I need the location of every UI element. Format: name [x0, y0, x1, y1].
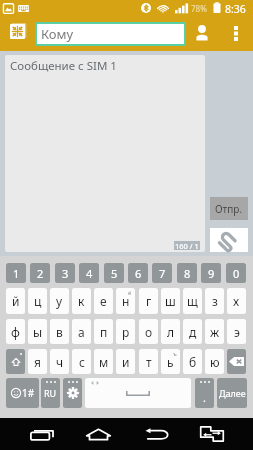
staticText: м: [99, 354, 109, 370]
staticText: з: [212, 293, 218, 309]
button[interactable]: 3: [55, 263, 75, 283]
button[interactable]: Back: [138, 422, 174, 446]
button[interactable]: 8: [177, 263, 197, 283]
button[interactable]: к: [72, 288, 91, 314]
staticText: п: [100, 324, 108, 340]
button[interactable]: ю: [205, 349, 224, 374]
staticText: 2: [37, 266, 44, 281]
staticText: ж: [210, 324, 220, 340]
button[interactable]: о: [139, 319, 158, 344]
button[interactable]: п: [94, 319, 113, 344]
button[interactable]: м: [94, 349, 113, 374]
button[interactable]: Next: [217, 378, 247, 408]
staticText: л: [167, 324, 175, 340]
staticText: ч: [56, 354, 64, 370]
button[interactable]: с: [72, 349, 91, 374]
button[interactable]: 2: [30, 263, 50, 283]
staticText: к: [78, 293, 85, 309]
staticText: р: [122, 324, 130, 340]
staticText: Сообщение с SIM 1: [10, 58, 117, 74]
button[interactable]: е: [94, 288, 113, 314]
button[interactable]: 0: [226, 263, 246, 283]
button[interactable]: Сообщение с SIM 1: [5, 55, 205, 252]
staticText: 9: [208, 266, 215, 281]
staticText: 0: [233, 266, 240, 281]
button[interactable]: 7: [152, 263, 172, 283]
button[interactable]: Отпр.: [210, 197, 248, 220]
staticText: Кому: [41, 25, 74, 43]
staticText: 6: [135, 266, 142, 281]
staticText: я: [34, 354, 41, 370]
button[interactable]: я: [28, 349, 47, 374]
staticText: щ: [187, 293, 198, 309]
staticText: Далее: [219, 387, 246, 399]
button[interactable]: Change language: [41, 378, 60, 408]
button[interactable]: Attach file: [210, 228, 248, 252]
staticText: б: [189, 354, 197, 370]
button[interactable]: Period: [195, 378, 214, 408]
staticText: н: [122, 293, 130, 309]
button[interactable]: г: [139, 288, 158, 314]
staticText: е: [100, 293, 107, 309]
button[interactable]: Space: [85, 378, 191, 408]
button[interactable]: Select contacts: [189, 20, 215, 46]
button[interactable]: х: [227, 288, 246, 314]
button[interactable]: т: [139, 349, 158, 374]
button[interactable]: Backspace: [227, 349, 246, 374]
button[interactable]: в: [50, 319, 69, 344]
button[interactable]: 4: [79, 263, 99, 283]
button[interactable]: л: [161, 319, 180, 344]
staticText: 5: [111, 266, 118, 281]
button[interactable]: й: [6, 288, 25, 314]
staticText: ю: [210, 354, 220, 370]
button[interactable]: а: [72, 319, 91, 344]
button[interactable]: 9: [201, 263, 221, 283]
staticText: 1#: [22, 386, 35, 400]
button[interactable]: ь: [161, 349, 180, 374]
staticText: о: [145, 324, 153, 340]
staticText: с: [79, 354, 85, 370]
button[interactable]: Кому: [35, 22, 186, 46]
button[interactable]: б: [183, 349, 202, 374]
staticText: 3: [62, 266, 69, 281]
staticText: RU: [44, 387, 57, 399]
staticText: 78%: [191, 3, 207, 14]
button[interactable]: 5: [104, 263, 124, 283]
staticText: 8:36: [225, 2, 246, 16]
staticText: т: [146, 354, 152, 370]
button[interactable]: More options: [223, 20, 249, 46]
staticText: й: [12, 293, 20, 309]
button[interactable]: ч: [50, 349, 69, 374]
button[interactable]: Recent apps: [24, 422, 60, 446]
staticText: ё: [128, 289, 132, 297]
staticText: д: [189, 324, 197, 340]
staticText: 7: [159, 266, 166, 281]
button[interactable]: Home: [80, 421, 116, 447]
staticText: г: [146, 293, 152, 309]
button[interactable]: Multi window: [194, 420, 230, 448]
button[interactable]: ж: [205, 319, 224, 344]
staticText: ш: [165, 293, 176, 309]
button[interactable]: ш: [161, 288, 180, 314]
button[interactable]: и: [116, 349, 135, 374]
button[interactable]: р: [116, 319, 135, 344]
button[interactable]: н: [116, 288, 135, 314]
button[interactable]: Collapse keyboard: [6, 20, 28, 42]
staticText: у: [56, 293, 63, 309]
button[interactable]: ы: [28, 319, 47, 344]
button[interactable]: 1: [6, 263, 26, 283]
button[interactable]: у: [50, 288, 69, 314]
button[interactable]: щ: [183, 288, 202, 314]
button[interactable]: Shift: [6, 349, 25, 374]
button[interactable]: Symbols: [6, 378, 39, 408]
button[interactable]: Settings: [63, 378, 82, 408]
button[interactable]: э: [227, 319, 246, 344]
staticText: 1: [13, 266, 20, 281]
staticText: 8: [184, 266, 191, 281]
staticText: Отпр.: [215, 202, 243, 216]
button[interactable]: д: [183, 319, 202, 344]
button[interactable]: з: [205, 288, 224, 314]
button[interactable]: ц: [28, 288, 47, 314]
button[interactable]: 6: [128, 263, 148, 283]
button[interactable]: ф: [6, 319, 25, 344]
